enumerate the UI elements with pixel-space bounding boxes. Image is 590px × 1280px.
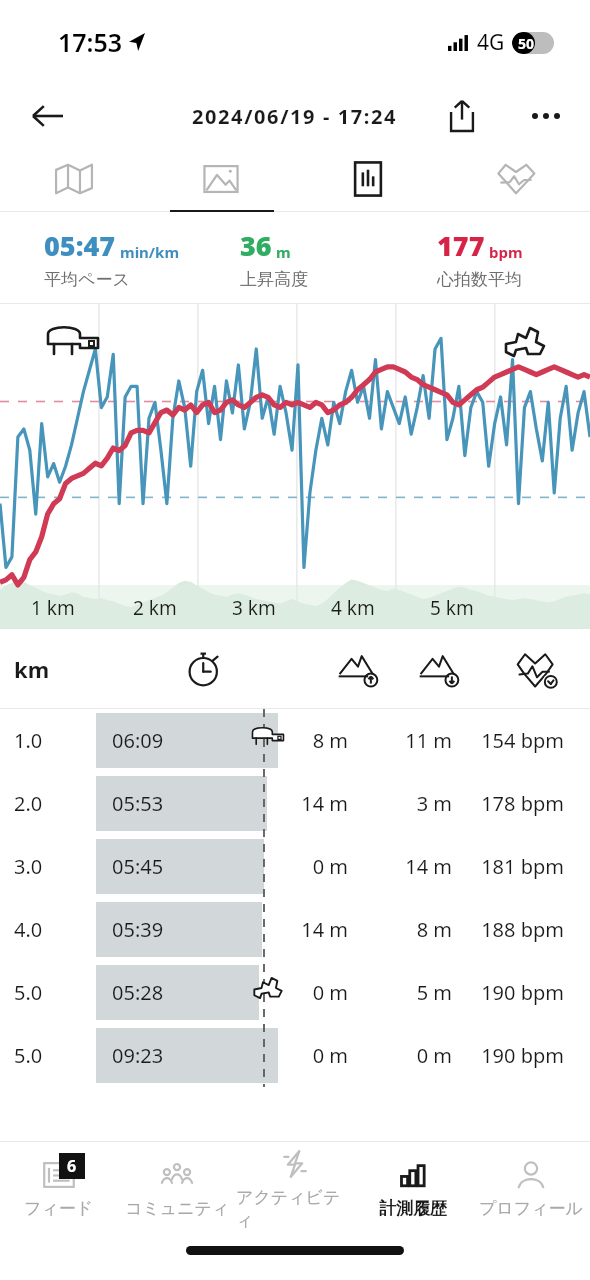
staticText: 05:45 — [112, 853, 164, 880]
button[interactable]: アクティビティ — [236, 1142, 354, 1234]
staticText: コミュニティ — [125, 1198, 230, 1219]
staticText: 2024/06/19 - 17:24 — [192, 103, 398, 130]
staticText: 05:53 — [112, 790, 164, 817]
staticText: min/km — [120, 242, 180, 262]
staticText: 188 bpm — [452, 916, 564, 943]
staticText: 5 km — [430, 595, 474, 621]
staticText: 50 — [518, 34, 535, 53]
staticText: 5 m — [372, 979, 452, 1006]
staticText: 3.0 — [14, 853, 43, 880]
button[interactable]: 3.0 — [0, 835, 590, 898]
button[interactable]: 5.0 — [0, 961, 590, 1024]
staticText: 14 m — [268, 916, 348, 943]
button[interactable]: Heart rate — [442, 148, 590, 210]
staticText: 3 m — [372, 790, 452, 817]
staticText: 05:28 — [112, 979, 164, 1006]
staticText: 181 bpm — [452, 853, 564, 880]
staticText: 05:39 — [112, 916, 164, 943]
staticText: 1.0 — [14, 727, 43, 754]
staticText: 09:23 — [112, 1042, 164, 1069]
staticText: 14 m — [372, 853, 452, 880]
staticText: bpm — [489, 242, 523, 262]
button[interactable]: 4.0 — [0, 898, 590, 961]
staticText: 3 km — [232, 595, 276, 621]
button[interactable]: Photos — [147, 148, 294, 210]
staticText: 0 m — [268, 853, 348, 880]
staticText: 17:53 — [58, 25, 123, 59]
staticText: 190 bpm — [452, 1042, 564, 1069]
button[interactable]: 5.0 — [0, 1024, 590, 1087]
staticText: 5.0 — [14, 1042, 43, 1069]
staticText: 平均ペース — [44, 269, 130, 290]
staticText: 190 bpm — [452, 979, 564, 1006]
other: Duration — [183, 647, 227, 691]
staticText: 2 km — [133, 595, 177, 621]
staticText: 0 m — [372, 1042, 452, 1069]
button[interactable]: Back — [22, 90, 74, 142]
staticText: km — [14, 654, 50, 684]
staticText: 4G — [477, 28, 505, 57]
button[interactable]: コミュニティ — [118, 1142, 236, 1234]
button[interactable]: 2.0 — [0, 772, 590, 835]
other: Elevation loss — [416, 646, 462, 692]
staticText: m — [276, 242, 291, 262]
staticText: 177 — [437, 227, 485, 264]
staticText: 0 m — [268, 1042, 348, 1069]
button[interactable]: Map — [0, 148, 147, 210]
staticText: 4 km — [331, 595, 375, 621]
button[interactable]: 6 — [0, 1142, 118, 1234]
other: Average heart rate — [514, 646, 560, 692]
button[interactable]: More options — [522, 92, 570, 140]
other: Elevation gain — [335, 646, 381, 692]
staticText: 178 bpm — [452, 790, 564, 817]
staticText: 1 km — [31, 595, 75, 621]
staticText: 心拍数平均 — [437, 269, 522, 290]
staticText: 14 m — [268, 790, 348, 817]
staticText: 36 — [240, 227, 272, 264]
staticText: アクティビティ — [236, 1187, 354, 1231]
staticText: 0 m — [268, 979, 348, 1006]
staticText: 11 m — [372, 727, 452, 754]
staticText: 上昇高度 — [240, 269, 308, 290]
staticText: フィード — [24, 1198, 94, 1219]
button[interactable]: プロフィール — [472, 1142, 590, 1234]
staticText: 5.0 — [14, 979, 43, 1006]
button[interactable]: Share — [438, 92, 486, 140]
staticText: 05:47 — [44, 227, 116, 264]
button[interactable]: 計測履歴 — [354, 1142, 472, 1234]
staticText: 4.0 — [14, 916, 43, 943]
staticText: 6 — [67, 1155, 77, 1177]
staticText: 8 m — [372, 916, 452, 943]
button[interactable]: Charts — [294, 148, 442, 210]
staticText: 06:09 — [112, 727, 164, 754]
staticText: プロフィール — [479, 1198, 583, 1219]
button[interactable]: 1.0 — [0, 709, 590, 772]
staticText: 8 m — [268, 727, 348, 754]
staticText: 計測履歴 — [379, 1198, 447, 1219]
staticText: 2.0 — [14, 790, 43, 817]
staticText: 154 bpm — [452, 727, 564, 754]
